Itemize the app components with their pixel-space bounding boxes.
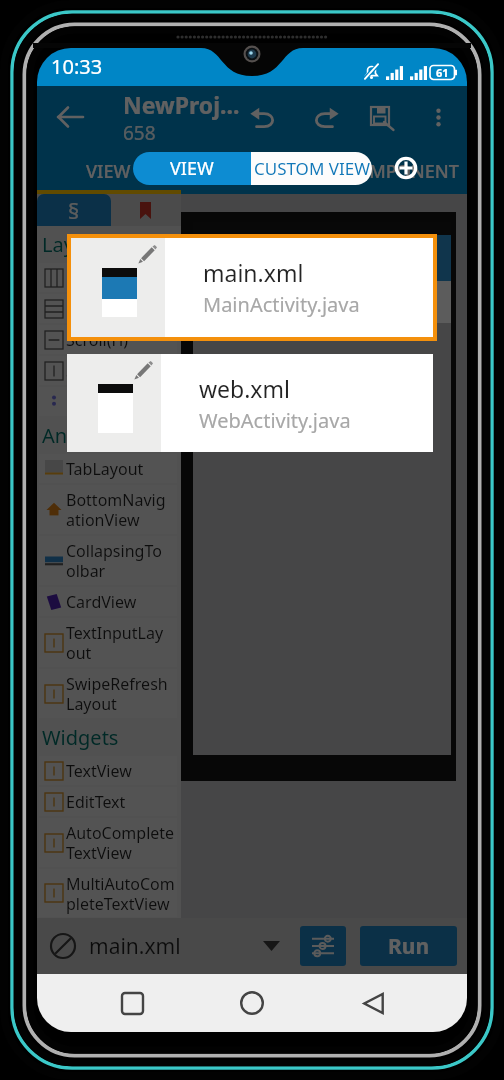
button[interactable]: SwipeRefresh Layout [39,669,177,718]
button[interactable]: COMPONENT [336,148,466,194]
button[interactable]: Recent apps [106,977,158,1029]
staticText: CUSTOM VIEW [254,157,370,180]
button[interactable]: VIEW [43,148,173,194]
button[interactable]: CollapsingTo olbar [39,536,177,585]
staticText: COMPONENT [344,159,459,184]
staticText: Android [42,422,117,449]
button[interactable]: main.xml [71,238,433,337]
button[interactable]: MultiAutoCom pleteTextView [39,869,177,917]
staticText: AutoComplete TextView [66,822,177,863]
button[interactable]: Redo [304,95,348,139]
button[interactable]: AutoComplete TextView [39,818,177,867]
staticText: Progress [66,391,177,413]
staticText: § [68,195,80,225]
button[interactable]: Back [347,977,399,1029]
staticText: 61 [436,65,449,80]
staticText: MultiAutoCom pleteTextView [66,873,177,914]
staticText: MainActivity.java [203,291,360,318]
button[interactable]: web.xml [67,354,433,452]
staticText: 10:33 [51,53,103,80]
staticText: main.xml [89,932,181,961]
button[interactable]: Scroll(V) [39,356,177,385]
button[interactable]: More options [420,99,456,135]
button[interactable]: Rotate preview [47,930,79,962]
staticText: main.xml [203,257,304,288]
staticText: BottomNavig ationView [66,489,177,530]
button[interactable]: EditText [39,787,177,816]
staticText: CardView [66,591,177,613]
staticText: EditText [66,791,177,813]
staticText: TextInputLay out [66,622,177,663]
button[interactable]: Save as [359,95,403,139]
button[interactable]: Scroll(H) [39,325,177,354]
staticText: Open Link [274,289,370,316]
button[interactable]: Progress [39,387,177,416]
button[interactable]: Layout palette [37,194,111,226]
button[interactable]: TextInputLay out [39,618,177,667]
button[interactable]: TextView [39,756,177,785]
button[interactable]: Undo [240,95,284,139]
staticText: VIEW [86,159,131,184]
staticText: TextView [66,760,177,782]
staticText: WebActivity.java [199,407,351,434]
staticText: Scroll(V) [66,360,177,382]
staticText: Run [388,932,430,961]
button[interactable]: Linear(H) [39,263,177,292]
staticText: Layouts [42,231,116,258]
button[interactable]: BottomNavig ationView [39,485,177,534]
button[interactable]: Add component [391,153,421,183]
button[interactable]: CUSTOM VIEW [251,152,372,185]
staticText: VIEW [170,156,214,181]
staticText: 658 [123,120,156,146]
staticText: Widgets [42,724,119,751]
button[interactable]: Run [360,926,457,966]
staticText: CollapsingTo olbar [66,540,177,581]
staticText: Scroll(H) [66,329,177,351]
button[interactable]: VIEW [133,152,251,185]
staticText: SwipeRefresh Layout [66,673,177,714]
button[interactable]: TabLayout [39,454,177,483]
staticText: Linear(H) [66,267,177,289]
staticText: TabLayout [66,458,177,480]
staticText: Linear(V) [66,298,177,320]
button[interactable]: Home [226,977,278,1029]
button[interactable]: Settings [300,926,346,966]
staticText: NewProj... [123,89,240,120]
button[interactable]: CardView [39,587,177,616]
button[interactable]: Linear(V) [39,294,177,323]
button[interactable]: Back [48,95,92,139]
button[interactable]: Bookmarks [111,194,179,226]
staticText: web.xml [199,373,290,404]
